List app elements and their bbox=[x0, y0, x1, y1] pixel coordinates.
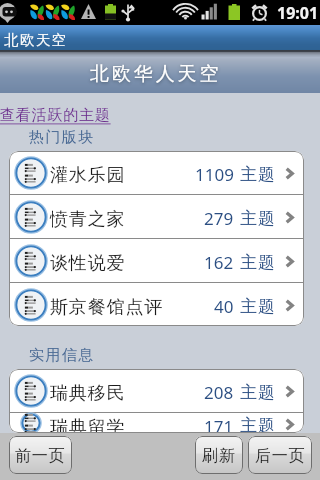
staticText: 灌水乐园 bbox=[50, 164, 126, 187]
staticText: 北欧天空 bbox=[4, 31, 68, 49]
button[interactable]: 刷新 bbox=[195, 436, 243, 474]
button[interactable]: 谈性说爱 bbox=[9, 239, 304, 282]
staticText: 主题 bbox=[240, 296, 276, 317]
staticText: 162 bbox=[204, 251, 234, 274]
staticText: 主题 bbox=[240, 208, 276, 229]
button[interactable]: 后一页 bbox=[248, 436, 312, 474]
button[interactable]: 前一页 bbox=[9, 436, 72, 474]
staticText: 后一页 bbox=[255, 446, 306, 466]
staticText: 北欧华人天空 bbox=[90, 62, 222, 86]
staticText: 279 bbox=[204, 207, 234, 230]
staticText: 主题 bbox=[240, 164, 276, 185]
staticText: 刷新 bbox=[202, 446, 236, 466]
button[interactable]: 瑞典移民 bbox=[9, 369, 304, 412]
staticText: 前一页 bbox=[15, 446, 66, 466]
staticText: 瑞典移民 bbox=[50, 382, 126, 405]
staticText: 40 bbox=[214, 295, 234, 318]
staticText: 实用信息 bbox=[29, 346, 95, 365]
button[interactable]: 斯京餐馆点评 bbox=[9, 283, 304, 326]
staticText: 1109 bbox=[195, 163, 234, 186]
button[interactable]: 瑞典留学 bbox=[9, 413, 304, 433]
staticText: 主题 bbox=[240, 252, 276, 273]
staticText: 19:01 bbox=[277, 2, 319, 24]
staticText: 主题 bbox=[240, 382, 276, 403]
staticText: 愤青之家 bbox=[50, 208, 126, 231]
staticText: 208 bbox=[204, 381, 234, 404]
button[interactable]: 愤青之家 bbox=[9, 195, 304, 238]
staticText: 热门版块 bbox=[29, 128, 95, 147]
staticText: 171 bbox=[204, 415, 234, 433]
staticText: 瑞典留学 bbox=[50, 416, 126, 433]
button[interactable]: 查看活跃的主题 bbox=[0, 107, 111, 126]
staticText: 斯京餐馆点评 bbox=[50, 296, 164, 319]
button[interactable]: 灌水乐园 bbox=[9, 151, 304, 194]
staticText: 谈性说爱 bbox=[50, 252, 126, 275]
staticText: 主题 bbox=[240, 415, 276, 433]
